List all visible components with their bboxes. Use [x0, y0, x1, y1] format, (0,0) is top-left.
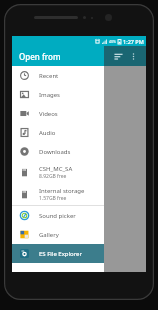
button[interactable]: Internal storage — [12, 183, 104, 205]
button[interactable]: log_[2103]_.txt — [12, 220, 146, 242]
staticText: Recent — [39, 72, 59, 80]
staticText: ES File Explorer — [39, 250, 82, 258]
staticText: 40% — [109, 39, 116, 44]
button[interactable]: CSH_MC_SA — [12, 161, 104, 183]
staticText: 1.57GB free — [39, 195, 67, 202]
button[interactable]: notes_[2103].txt — [12, 198, 146, 220]
button[interactable]: ES File Explorer — [12, 244, 104, 263]
staticText: 1:27 PM — [123, 38, 144, 45]
staticText: Gallery — [39, 231, 59, 239]
staticText: 8.92GB free — [39, 173, 67, 180]
button[interactable]: Images — [12, 85, 104, 104]
button[interactable]: report_[2103]_1.txt — [12, 176, 146, 198]
staticText: CSH_MC_SA — [39, 165, 73, 173]
button[interactable]: data_[2103].txt — [12, 242, 146, 264]
staticText: Images — [39, 91, 60, 99]
button[interactable]: Videos — [12, 104, 104, 123]
staticText: Videos — [39, 110, 58, 118]
button[interactable]: Gallery — [12, 225, 104, 244]
button[interactable]: Downloads — [12, 142, 104, 161]
staticText: Internal storage — [39, 187, 85, 195]
staticText: Audio — [39, 129, 56, 137]
staticText: Open from — [19, 51, 61, 62]
staticText: Downloads — [39, 148, 71, 156]
staticText: Sound picker — [39, 212, 76, 220]
staticText: log_[2103]_.txt — [52, 228, 90, 235]
button[interactable]: More options — [126, 49, 140, 63]
button[interactable]: Sort — [110, 48, 126, 64]
staticText: data_[2103].txt — [52, 250, 91, 257]
button[interactable]: Recent — [12, 66, 104, 85]
button[interactable]: Sound picker — [12, 206, 104, 225]
staticText: report_[2103]_1.txt — [52, 184, 101, 191]
button[interactable]: Audio — [12, 123, 104, 142]
